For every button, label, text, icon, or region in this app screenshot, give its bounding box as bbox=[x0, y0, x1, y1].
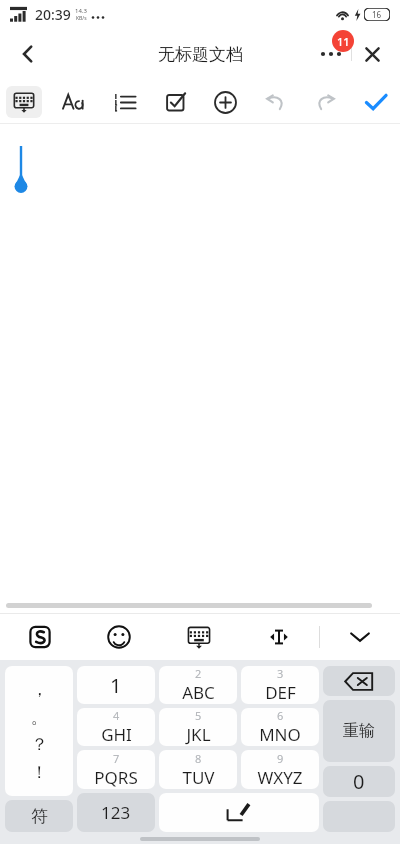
staticText: ？ bbox=[31, 734, 48, 755]
button[interactable]: Hide keyboard bbox=[320, 614, 400, 660]
button[interactable] bbox=[323, 666, 395, 696]
staticText: DEF bbox=[265, 681, 296, 704]
staticText: 1 bbox=[110, 672, 122, 699]
staticText: JKL bbox=[186, 723, 211, 746]
button[interactable]: ， bbox=[5, 666, 73, 796]
button[interactable]: Move cursor bbox=[239, 614, 319, 660]
staticText: 20:39 bbox=[35, 5, 71, 24]
button[interactable]: 123 bbox=[77, 793, 155, 832]
staticText: 0 bbox=[353, 768, 365, 795]
staticText: 123 bbox=[101, 801, 131, 824]
button[interactable]: 0 bbox=[323, 766, 395, 797]
staticText: 符 bbox=[31, 806, 48, 827]
button[interactable]: Done bbox=[358, 84, 394, 120]
button[interactable]: 符 bbox=[5, 800, 73, 832]
button[interactable]: 7 bbox=[77, 750, 155, 789]
staticText: 9 bbox=[277, 751, 284, 766]
button[interactable]: Undo bbox=[257, 84, 293, 120]
staticText: GHI bbox=[101, 723, 132, 746]
button[interactable]: 3 bbox=[241, 666, 319, 704]
staticText: 11 bbox=[337, 34, 350, 49]
staticText: 16 bbox=[372, 9, 382, 20]
button[interactable]: Checklist bbox=[157, 84, 193, 120]
staticText: ， bbox=[31, 679, 48, 700]
button[interactable]: 6 bbox=[241, 708, 319, 746]
staticText: 。 bbox=[31, 707, 48, 728]
staticText: 无标题文档 bbox=[158, 44, 243, 65]
staticText: 8 bbox=[195, 751, 202, 766]
button[interactable]: Redo bbox=[308, 84, 344, 120]
staticText: 5 bbox=[195, 708, 202, 723]
staticText: 重输 bbox=[343, 721, 375, 741]
button[interactable]: Keyboard bbox=[6, 86, 42, 118]
button[interactable]: 8 bbox=[159, 750, 237, 789]
button[interactable]: 重输 bbox=[323, 700, 395, 762]
staticText: WXYZ bbox=[257, 766, 303, 789]
button[interactable]: Sogou input bbox=[0, 614, 79, 660]
button[interactable]: Keyboard layout bbox=[159, 614, 239, 660]
button[interactable]: 2 bbox=[159, 666, 237, 704]
button[interactable]: 5 bbox=[159, 708, 237, 746]
staticText: MNO bbox=[259, 723, 301, 746]
staticText: 3 bbox=[277, 666, 284, 681]
staticText: ！ bbox=[31, 762, 48, 783]
staticText: PQRS bbox=[94, 766, 138, 789]
staticText: KB/s bbox=[76, 15, 87, 22]
staticText: 4 bbox=[113, 708, 120, 723]
staticText: 14.3 bbox=[75, 7, 87, 15]
button[interactable]: More options bbox=[309, 39, 351, 69]
staticText: 2 bbox=[195, 666, 202, 681]
button[interactable]: 9 bbox=[241, 750, 319, 789]
button[interactable] bbox=[159, 793, 319, 832]
button[interactable]: Back bbox=[8, 34, 48, 74]
staticText: TUV bbox=[182, 766, 215, 789]
button[interactable]: Numbered list bbox=[107, 84, 143, 120]
staticText: 7 bbox=[113, 751, 120, 766]
staticText: ABC bbox=[182, 681, 215, 704]
button[interactable]: 4 bbox=[77, 708, 155, 746]
button[interactable]: Emoji bbox=[79, 614, 159, 660]
button[interactable]: 1 bbox=[77, 666, 155, 704]
button[interactable]: Font style bbox=[56, 84, 92, 120]
button[interactable]: Close bbox=[352, 39, 392, 69]
button[interactable]: Insert bbox=[207, 84, 243, 120]
staticText: 6 bbox=[277, 708, 284, 723]
